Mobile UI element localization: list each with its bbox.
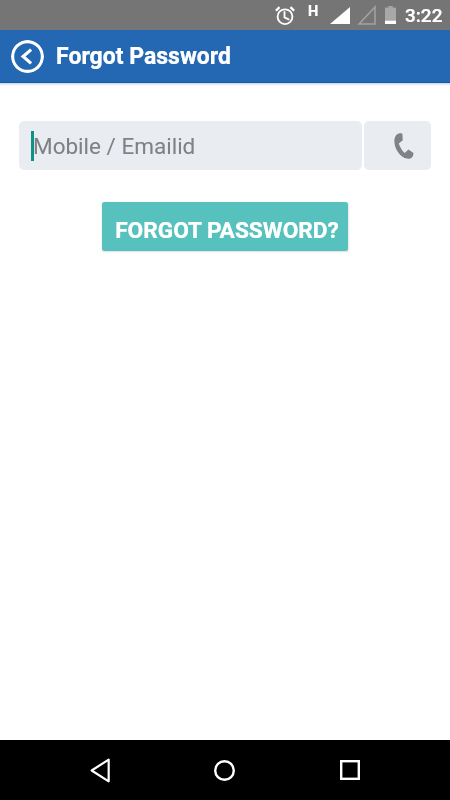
staticText: Forgot Password xyxy=(56,43,232,70)
button[interactable]: Home xyxy=(162,740,287,800)
button[interactable]: Call xyxy=(364,121,431,170)
button[interactable]: Back xyxy=(11,40,44,73)
button[interactable]: Recent apps xyxy=(287,740,412,800)
staticText: 3:22 xyxy=(405,4,443,26)
button[interactable]: Mobile / Emailid xyxy=(19,121,362,170)
button[interactable]: FORGOT PASSWORD? xyxy=(102,202,348,251)
staticText: H xyxy=(308,3,319,20)
button[interactable]: Back xyxy=(38,740,162,800)
staticText: Mobile / Emailid xyxy=(33,133,196,159)
staticText: FORGOT PASSWORD? xyxy=(115,217,339,244)
